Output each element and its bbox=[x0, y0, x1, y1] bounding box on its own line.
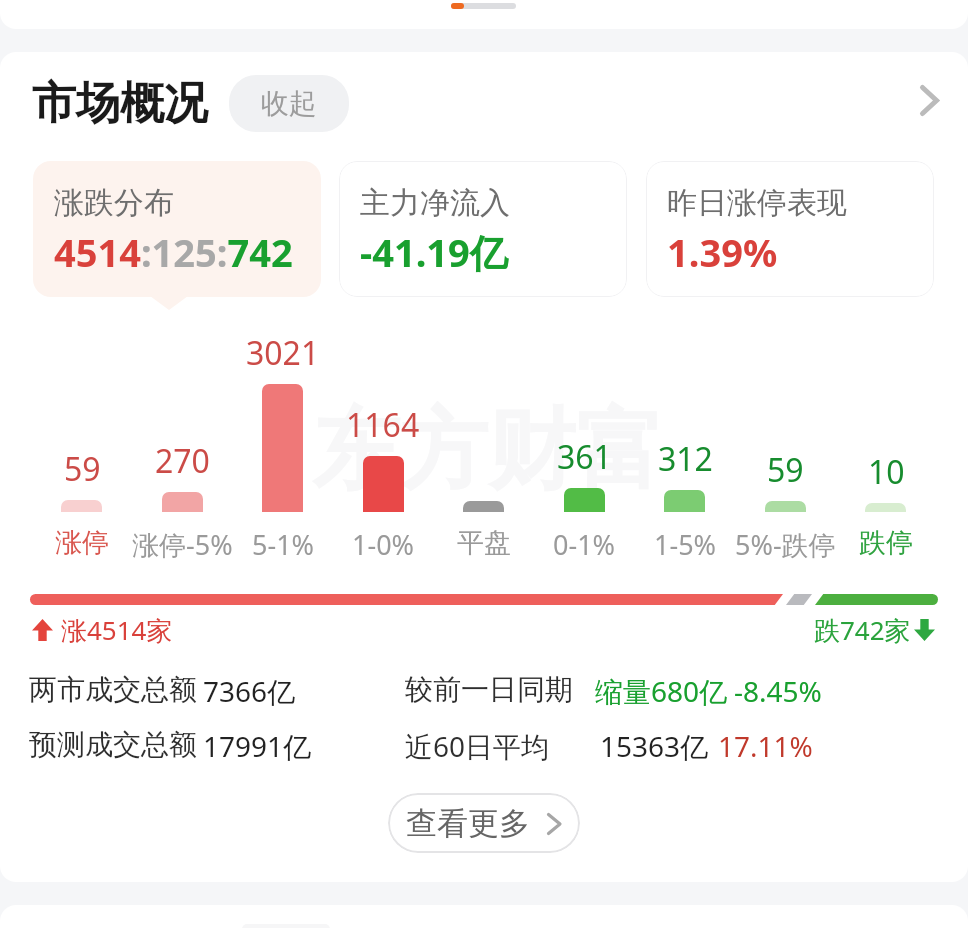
staticText: 312 bbox=[658, 437, 713, 481]
staticText: 15363亿 bbox=[600, 727, 709, 765]
button[interactable]: 主力净流入 bbox=[339, 161, 627, 297]
staticText: 跌停 bbox=[859, 526, 913, 560]
button[interactable]: 涨跌分布 bbox=[33, 161, 321, 297]
staticText: 5%-跌停 bbox=[735, 526, 836, 563]
button[interactable]: 查看更多 bbox=[388, 793, 580, 853]
staticText: 0-1% bbox=[553, 526, 616, 563]
staticText: 5-1% bbox=[252, 526, 315, 563]
staticText: 7366亿 bbox=[203, 672, 296, 710]
staticText: 270 bbox=[155, 439, 210, 483]
staticText: 17991亿 bbox=[203, 727, 312, 765]
button[interactable]: 昨日涨停表现 bbox=[646, 161, 934, 297]
staticText: 跌742家 bbox=[814, 612, 911, 648]
staticText: 361 bbox=[557, 435, 612, 479]
staticText: -8.45% bbox=[734, 672, 822, 710]
staticText: 1-5% bbox=[654, 526, 717, 563]
staticText: 预测成交总额 bbox=[29, 727, 197, 762]
button[interactable]: 收起 bbox=[229, 75, 349, 132]
staticText: -41.19亿 bbox=[360, 226, 508, 278]
button[interactable]: 更多 bbox=[898, 69, 960, 131]
staticText: 较前一日同期 bbox=[405, 672, 573, 707]
staticText: 涨停 bbox=[55, 526, 109, 560]
staticText: 主力净流入 bbox=[360, 184, 510, 222]
staticText: 1-0% bbox=[352, 526, 415, 563]
staticText: 4514:125:742 bbox=[54, 226, 293, 278]
staticText: 1.39% bbox=[667, 226, 778, 278]
staticText: 1164 bbox=[346, 403, 420, 447]
staticText: 市场概况 bbox=[32, 76, 208, 131]
staticText: 缩量680亿 bbox=[595, 672, 728, 710]
staticText: 涨停-5% bbox=[132, 526, 233, 563]
staticText: 近60日平均 bbox=[405, 727, 550, 765]
staticText: 东方财富 bbox=[312, 395, 664, 506]
staticText: 查看更多 bbox=[406, 804, 530, 843]
staticText: 59 bbox=[64, 447, 101, 491]
staticText: 59 bbox=[767, 448, 804, 492]
staticText: 17.11% bbox=[718, 727, 813, 765]
staticText: 平盘 bbox=[457, 526, 511, 560]
staticText: 涨4514家 bbox=[61, 612, 173, 648]
staticText: 10 bbox=[868, 450, 905, 494]
staticText: 3021 bbox=[246, 331, 320, 375]
staticText: 两市成交总额 bbox=[29, 672, 197, 707]
staticText: 涨跌分布 bbox=[54, 184, 174, 222]
staticText: 收起 bbox=[261, 86, 317, 121]
staticText: 昨日涨停表现 bbox=[667, 184, 847, 222]
